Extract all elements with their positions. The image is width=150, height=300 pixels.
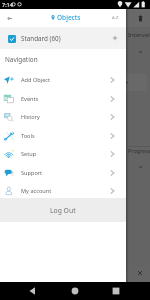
button[interactable]: Recents — [104, 282, 128, 300]
button[interactable]: Support — [0, 164, 126, 182]
staticText: Objects — [57, 13, 81, 22]
staticText: Navigation — [5, 55, 38, 64]
staticText: Log Out — [50, 206, 76, 215]
staticText: 7:14 — [2, 1, 13, 8]
button[interactable]: Home — [63, 282, 87, 300]
button[interactable]: Add — [110, 33, 120, 43]
button[interactable]: Setup — [0, 145, 126, 163]
button[interactable]: Log Out — [0, 198, 126, 222]
staticText: Events — [21, 95, 39, 103]
button[interactable]: A-Z — [112, 15, 119, 21]
staticText: Tools — [21, 132, 35, 140]
staticText: History — [21, 113, 40, 121]
button[interactable]: Standard checkbox — [8, 35, 16, 43]
button[interactable]: Back — [20, 282, 44, 300]
staticText: Standard (60) — [21, 34, 61, 43]
staticText: Setup — [21, 150, 37, 158]
staticText: My account — [21, 187, 52, 195]
staticText: Interval — [128, 31, 150, 39]
button[interactable]: History — [0, 108, 126, 126]
button[interactable]: Back — [0, 9, 18, 27]
button[interactable]: Add Object — [0, 71, 126, 89]
staticText: Support — [21, 169, 43, 177]
staticText: A-Z — [112, 15, 119, 21]
button[interactable]: My account — [0, 182, 126, 200]
staticText: Progress — [128, 147, 150, 154]
button[interactable]: Events — [0, 90, 126, 108]
button[interactable]: Tools — [0, 127, 126, 145]
staticText: Add Object — [21, 76, 51, 84]
